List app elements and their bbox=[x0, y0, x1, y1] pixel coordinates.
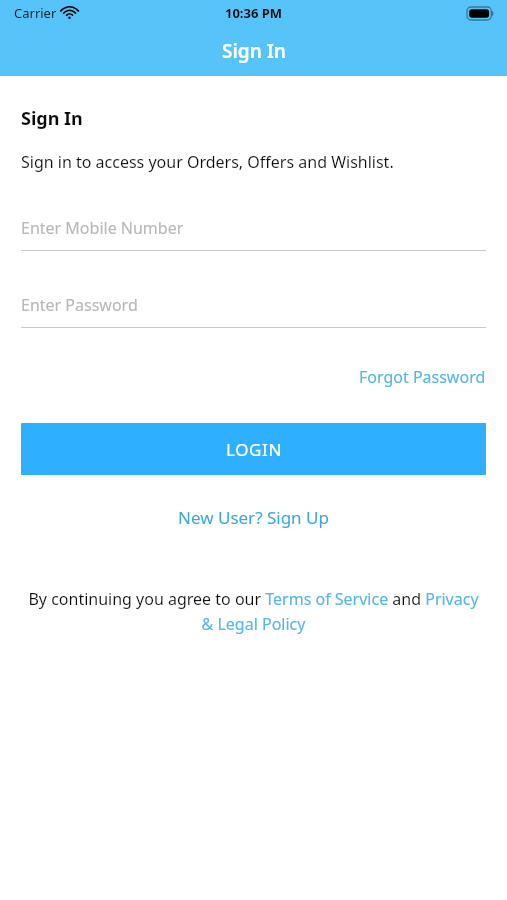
staticText: New User? Sign Up bbox=[178, 506, 329, 529]
other: Wi-Fi signal bbox=[62, 7, 77, 19]
staticText: LOGIN bbox=[226, 438, 282, 461]
staticText: Enter Password bbox=[21, 294, 138, 316]
staticText: Enter Mobile Number bbox=[21, 217, 184, 239]
staticText: Sign In bbox=[21, 106, 83, 131]
staticText: Forgot Password bbox=[359, 366, 486, 388]
staticText: By continuing you agree to our Terms of … bbox=[22, 588, 485, 634]
button[interactable]: Enter Mobile Number bbox=[21, 211, 486, 251]
button[interactable]: Forgot Password bbox=[359, 364, 486, 390]
button[interactable]: Enter Password bbox=[21, 288, 486, 328]
staticText: Sign In bbox=[222, 38, 286, 64]
other: Battery full bbox=[467, 7, 494, 20]
staticText: Carrier bbox=[14, 4, 57, 22]
staticText: Sign in to access your Orders, Offers an… bbox=[21, 151, 394, 173]
button[interactable]: New User? Sign Up bbox=[172, 503, 335, 532]
button[interactable]: LOGIN bbox=[21, 423, 486, 475]
staticText: 10:36 PM bbox=[225, 4, 283, 22]
